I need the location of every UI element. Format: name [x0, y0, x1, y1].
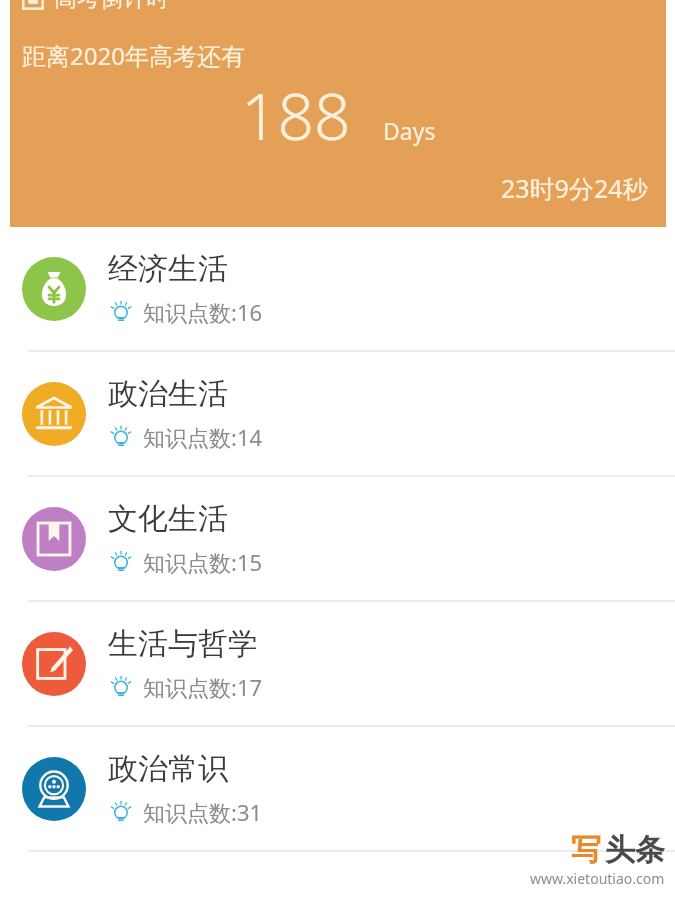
- button[interactable]: 经济生活: [0, 227, 675, 350]
- button[interactable]: 政治生活: [0, 352, 675, 475]
- other: Knowledge points: [108, 799, 134, 825]
- staticText: 文化生活: [108, 500, 228, 538]
- staticText: 知识点数:17: [143, 672, 263, 702]
- staticText: 高考倒计时: [54, 0, 169, 13]
- staticText: 知识点数:31: [143, 797, 263, 827]
- other: Knowledge points: [108, 424, 134, 450]
- staticText: 知识点数:16: [143, 297, 263, 327]
- button[interactable]: 政治常识: [0, 727, 675, 850]
- staticText: 政治常识: [108, 750, 228, 788]
- other: Knowledge points: [108, 299, 134, 325]
- button[interactable]: 文化生活: [0, 477, 675, 600]
- staticText: Days: [383, 115, 436, 146]
- other: Knowledge points: [108, 549, 134, 575]
- staticText: 写: [571, 831, 601, 869]
- staticText: 头条: [605, 831, 665, 869]
- staticText: www.xietoutiao.com: [530, 869, 665, 888]
- other: Countdown: [22, 0, 44, 10]
- staticText: 政治生活: [108, 375, 228, 413]
- staticText: 生活与哲学: [108, 625, 258, 663]
- staticText: 188: [241, 72, 351, 159]
- button[interactable]: 生活与哲学: [0, 602, 675, 725]
- staticText: 23时9分24秒: [501, 171, 648, 205]
- staticText: 知识点数:15: [143, 547, 263, 577]
- other: Knowledge points: [108, 674, 134, 700]
- staticText: 知识点数:14: [143, 422, 263, 452]
- staticText: 距离2020年高考还有: [22, 39, 245, 72]
- button[interactable]: Countdown: [10, 0, 666, 227]
- staticText: 经济生活: [108, 250, 228, 288]
